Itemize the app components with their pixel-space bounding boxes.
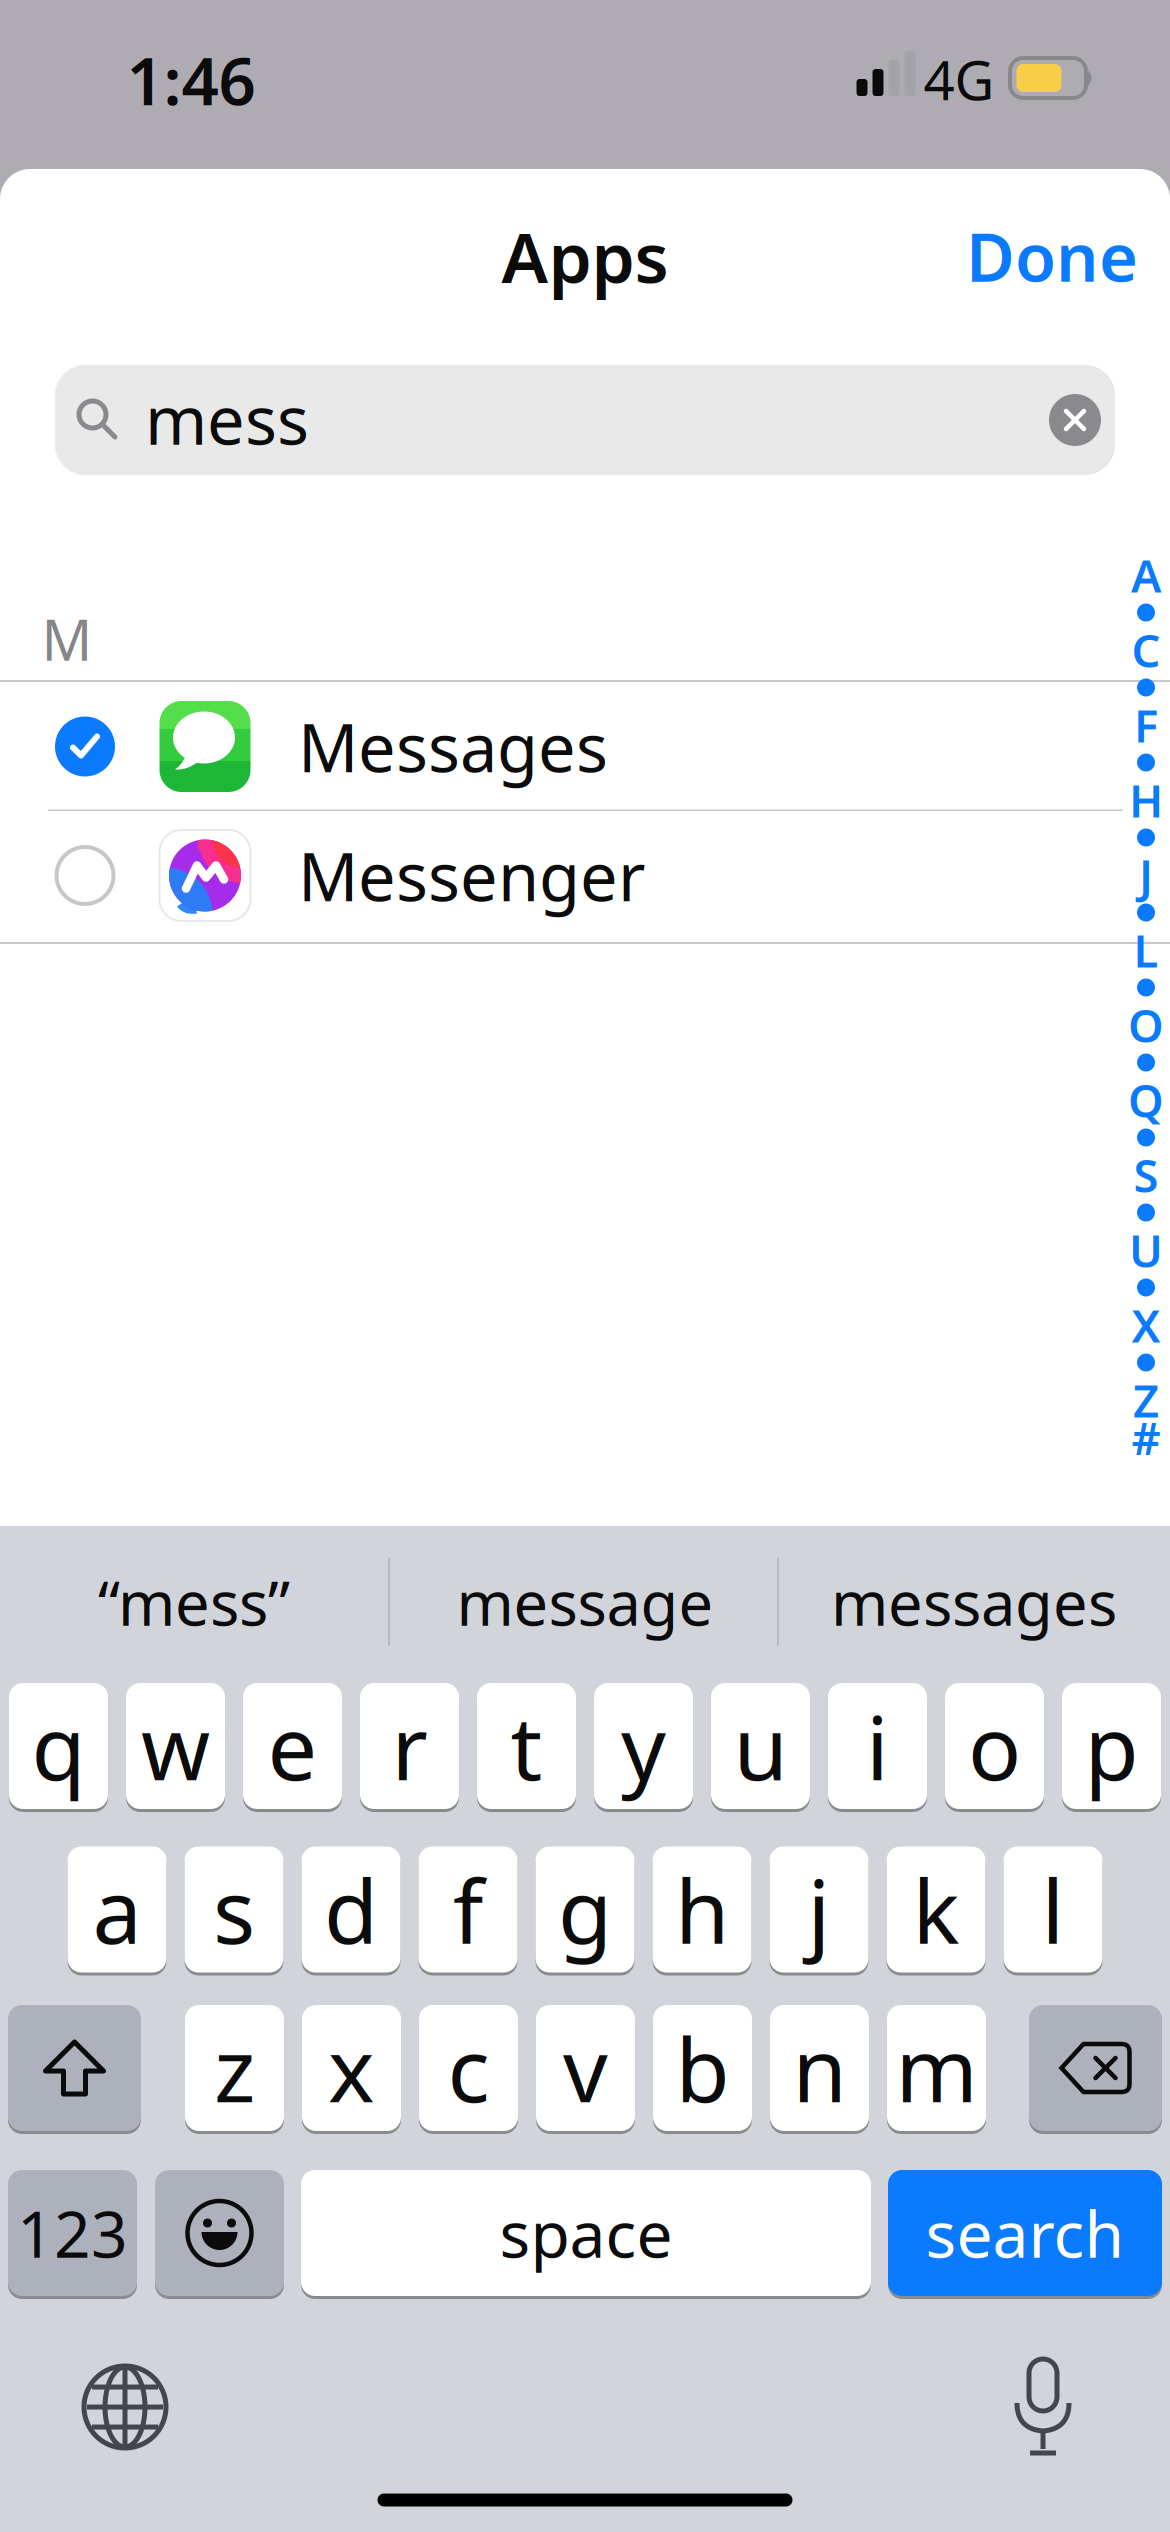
button[interactable]: r bbox=[360, 1681, 459, 1810]
staticText: Messenger bbox=[298, 831, 646, 920]
button[interactable]: a bbox=[67, 1845, 166, 1974]
staticText: M bbox=[41, 602, 92, 676]
staticText: e bbox=[267, 1688, 317, 1804]
staticText: k bbox=[912, 1851, 959, 1968]
staticText: message bbox=[456, 1561, 713, 1643]
button[interactable]: Messages bbox=[0, 682, 1170, 811]
button[interactable]: d bbox=[301, 1845, 400, 1974]
button[interactable]: “mess” bbox=[4, 1552, 384, 1652]
button[interactable]: Dictation bbox=[993, 2356, 1093, 2456]
staticText: s bbox=[213, 1851, 255, 1968]
staticText: L bbox=[1133, 920, 1158, 980]
staticText: u bbox=[733, 1688, 787, 1804]
staticText: messages bbox=[831, 1561, 1117, 1643]
button[interactable]: Done bbox=[966, 212, 1138, 300]
staticText: 123 bbox=[17, 2190, 128, 2275]
staticText: O bbox=[1128, 995, 1164, 1055]
staticText: y bbox=[621, 1688, 666, 1804]
staticText: n bbox=[792, 2010, 846, 2126]
button[interactable]: i bbox=[828, 1681, 927, 1810]
button[interactable]: t bbox=[477, 1681, 576, 1810]
button[interactable]: q bbox=[9, 1681, 108, 1810]
button[interactable]: w bbox=[126, 1681, 225, 1810]
staticText: F bbox=[1134, 695, 1158, 755]
staticText: f bbox=[453, 1851, 483, 1968]
button[interactable]: p bbox=[1062, 1681, 1161, 1810]
staticText: r bbox=[391, 1688, 427, 1804]
staticText: g bbox=[558, 1851, 612, 1968]
button[interactable]: message bbox=[395, 1552, 775, 1652]
button[interactable]: messages bbox=[784, 1552, 1164, 1652]
staticText: H bbox=[1129, 770, 1163, 830]
staticText: p bbox=[1084, 1688, 1138, 1804]
staticText: A bbox=[1131, 545, 1161, 605]
staticText: a bbox=[92, 1851, 141, 1968]
button[interactable]: x bbox=[302, 2003, 401, 2132]
button[interactable]: n bbox=[770, 2003, 869, 2132]
button[interactable]: s bbox=[184, 1845, 283, 1974]
button[interactable]: Messenger bbox=[0, 811, 1170, 940]
staticText: C bbox=[1131, 620, 1160, 680]
staticText: Done bbox=[966, 212, 1138, 300]
button[interactable]: search bbox=[888, 2168, 1162, 2297]
button[interactable]: e bbox=[243, 1681, 342, 1810]
staticText: w bbox=[141, 1688, 210, 1804]
staticText: d bbox=[324, 1851, 378, 1968]
staticText: search bbox=[925, 2190, 1124, 2275]
button[interactable]: v bbox=[536, 2003, 635, 2132]
button[interactable]: space bbox=[301, 2168, 871, 2297]
staticText: 4G bbox=[923, 43, 994, 115]
staticText: mess bbox=[145, 375, 309, 463]
staticText: # bbox=[1131, 1407, 1160, 1468]
staticText: Z bbox=[1133, 1370, 1159, 1430]
button[interactable]: z bbox=[185, 2003, 284, 2132]
staticText: space bbox=[499, 2190, 672, 2275]
staticText: x bbox=[328, 2010, 375, 2126]
button[interactable]: Next keyboard bbox=[75, 2357, 175, 2457]
button[interactable]: c bbox=[419, 2003, 518, 2132]
button[interactable]: Shift bbox=[8, 2003, 141, 2132]
button[interactable]: g bbox=[535, 1845, 634, 1974]
staticText: Apps bbox=[501, 210, 668, 302]
staticText: U bbox=[1129, 1220, 1163, 1280]
staticText: t bbox=[510, 1688, 542, 1804]
staticText: j bbox=[807, 1851, 830, 1968]
button[interactable]: m bbox=[887, 2003, 986, 2132]
button[interactable]: h bbox=[652, 1845, 751, 1974]
staticText: J bbox=[1139, 845, 1153, 905]
staticText: m bbox=[895, 2010, 977, 2126]
button[interactable]: Emoji bbox=[155, 2168, 284, 2297]
staticText: c bbox=[447, 2010, 489, 2126]
staticText: l bbox=[1041, 1851, 1064, 1968]
staticText: b bbox=[675, 2010, 729, 2126]
staticText: q bbox=[31, 1688, 85, 1804]
button[interactable]: Numbers bbox=[8, 2168, 137, 2297]
staticText: S bbox=[1133, 1145, 1158, 1205]
button[interactable]: l bbox=[1003, 1845, 1102, 1974]
button[interactable]: y bbox=[594, 1681, 693, 1810]
button[interactable]: Clear text bbox=[1049, 394, 1101, 446]
button[interactable]: Search bbox=[55, 365, 1115, 475]
button[interactable]: b bbox=[653, 2003, 752, 2132]
staticText: i bbox=[866, 1688, 889, 1804]
button[interactable]: Section index bbox=[1122, 540, 1170, 1490]
button[interactable]: j bbox=[769, 1845, 868, 1974]
staticText: X bbox=[1131, 1295, 1160, 1355]
button[interactable]: o bbox=[945, 1681, 1044, 1810]
button[interactable]: u bbox=[711, 1681, 810, 1810]
button[interactable]: Delete bbox=[1029, 2003, 1162, 2132]
staticText: z bbox=[214, 2010, 255, 2126]
button[interactable]: f bbox=[418, 1845, 517, 1974]
staticText: h bbox=[675, 1851, 729, 1968]
staticText: Q bbox=[1128, 1070, 1164, 1130]
staticText: v bbox=[563, 2010, 608, 2126]
staticText: “mess” bbox=[98, 1561, 290, 1643]
button[interactable]: k bbox=[886, 1845, 985, 1974]
staticText: 1:46 bbox=[126, 37, 255, 123]
staticText: Messages bbox=[298, 702, 608, 791]
staticText: o bbox=[968, 1688, 1021, 1804]
